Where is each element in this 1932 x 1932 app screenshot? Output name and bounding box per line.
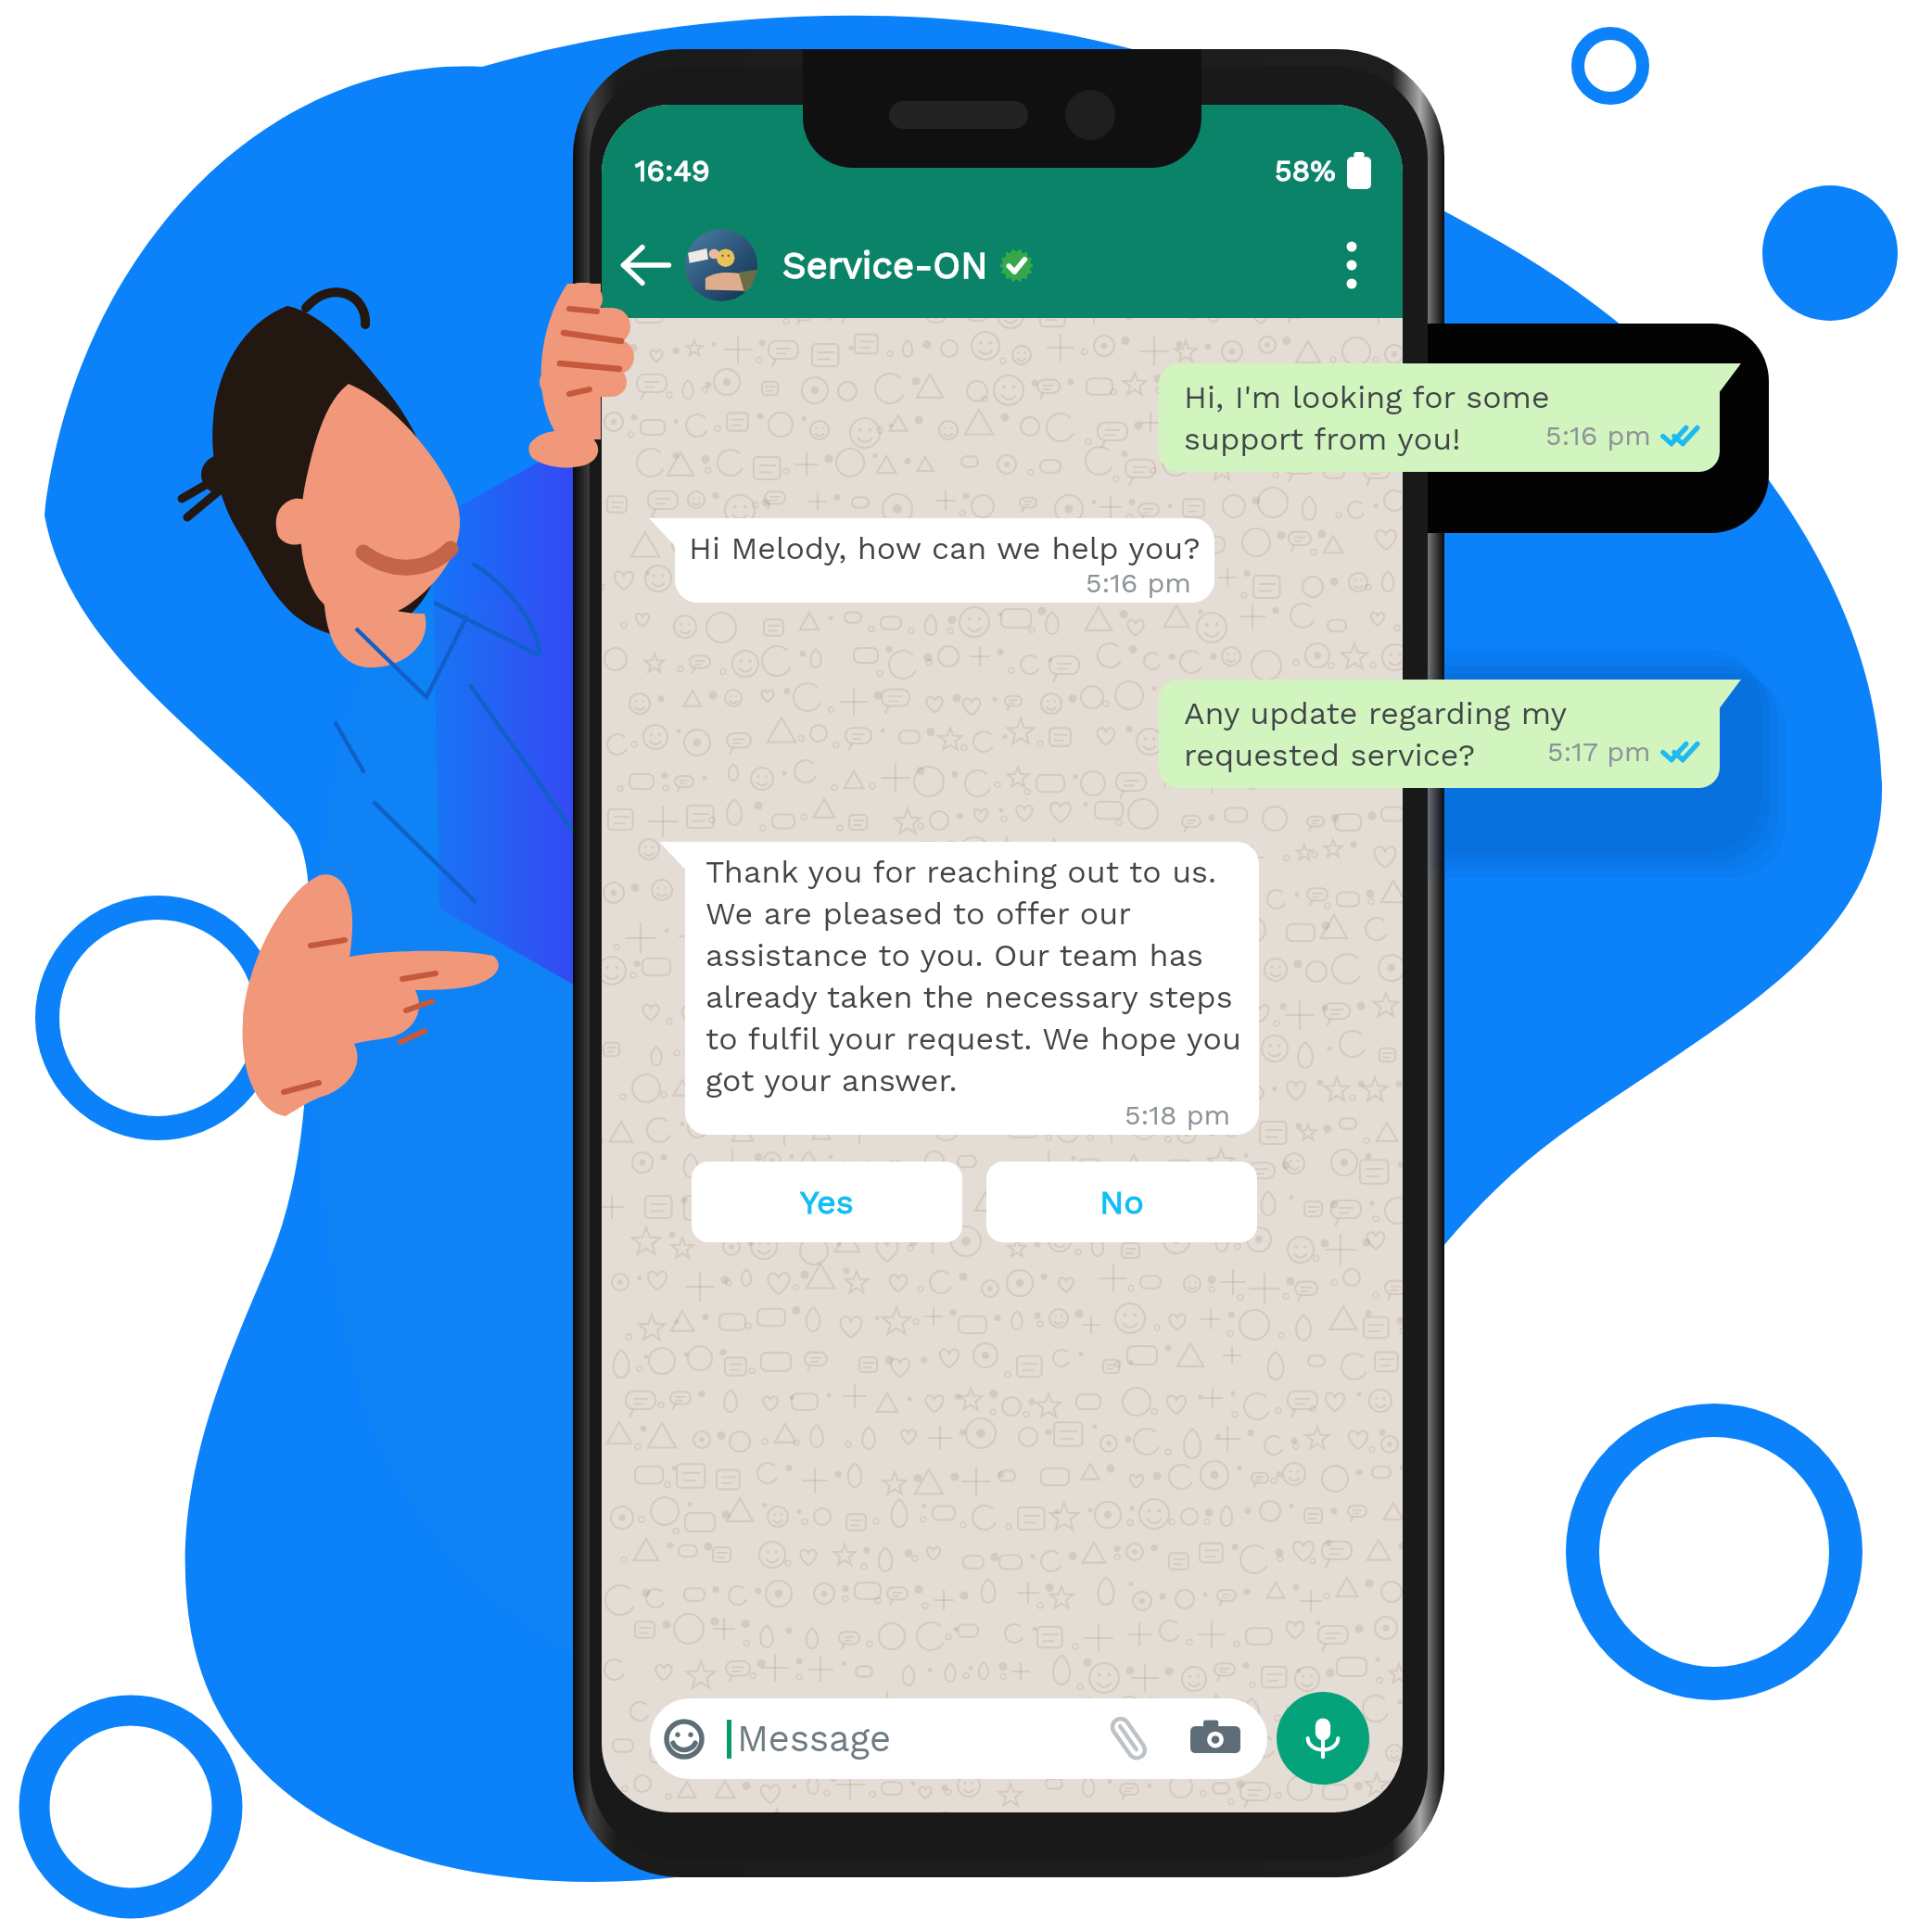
button[interactable]: Back: [622, 241, 670, 289]
staticText: 5:16 pm: [1545, 419, 1651, 451]
button[interactable]: More options: [1328, 242, 1375, 288]
button[interactable]: Any update regarding my requested servic…: [1159, 680, 1720, 788]
button[interactable]: Yes: [692, 1162, 962, 1242]
button[interactable]: Record voice message: [1277, 1692, 1369, 1785]
staticText: 58%: [1275, 153, 1336, 188]
staticText: Service-ON: [782, 244, 988, 287]
staticText: Any update regarding my requested servic…: [1184, 694, 1595, 773]
button[interactable]: Hi, I'm looking for some support from yo…: [1159, 363, 1720, 472]
staticText: No: [1099, 1183, 1144, 1222]
button[interactable]: Camera: [1190, 1714, 1240, 1764]
staticText: 5:17 pm: [1547, 735, 1651, 768]
button[interactable]: No: [986, 1162, 1257, 1242]
staticText: Yes: [800, 1183, 854, 1222]
staticText: 16:49: [635, 153, 710, 188]
button[interactable]: Hi Melody, how can we help you?: [675, 518, 1214, 603]
button[interactable]: Message: [650, 1698, 1267, 1779]
staticText: 5:16 pm: [1086, 566, 1191, 599]
staticText: 5:18 pm: [1125, 1099, 1231, 1131]
staticText: Message: [737, 1717, 892, 1760]
button[interactable]: Attach file: [1105, 1715, 1153, 1763]
button[interactable]: Thank you for reaching out to us. We are…: [685, 842, 1259, 1135]
staticText: Hi Melody, how can we help you?: [689, 529, 1210, 566]
staticText: Hi, I'm looking for some support from yo…: [1184, 378, 1595, 457]
staticText: Thank you for reaching out to us. We are…: [705, 853, 1243, 1099]
